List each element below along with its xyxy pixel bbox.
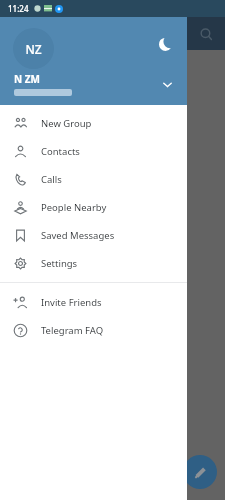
staticText: New Group xyxy=(41,117,92,130)
button[interactable]: Contacts xyxy=(0,137,187,165)
staticText: Settings xyxy=(41,257,78,270)
staticText: People Nearby xyxy=(41,201,107,214)
button[interactable]: Search xyxy=(193,21,219,47)
staticText: Saved Messages xyxy=(41,229,115,242)
staticText: Contacts xyxy=(41,145,80,158)
button[interactable]: Expand accounts xyxy=(156,73,178,95)
button[interactable]: Saved Messages xyxy=(0,221,187,249)
button[interactable]: New Group xyxy=(0,109,187,137)
button[interactable]: Invite Friends xyxy=(0,288,187,316)
staticText: Calls xyxy=(41,173,62,186)
button[interactable]: New message xyxy=(183,455,217,489)
button[interactable]: Calls xyxy=(0,165,187,193)
button[interactable]: Night mode xyxy=(152,31,178,57)
button[interactable]: Telegram FAQ xyxy=(0,316,187,344)
staticText: 11:24 xyxy=(8,3,29,14)
staticText: N ZM xyxy=(14,72,40,86)
button[interactable]: People Nearby xyxy=(0,193,187,221)
staticText: Invite Friends xyxy=(41,296,102,309)
button[interactable]: NZ xyxy=(13,28,54,69)
staticText: Telegram FAQ xyxy=(41,324,104,337)
button[interactable]: Settings xyxy=(0,249,187,277)
staticText: NZ xyxy=(25,41,42,57)
